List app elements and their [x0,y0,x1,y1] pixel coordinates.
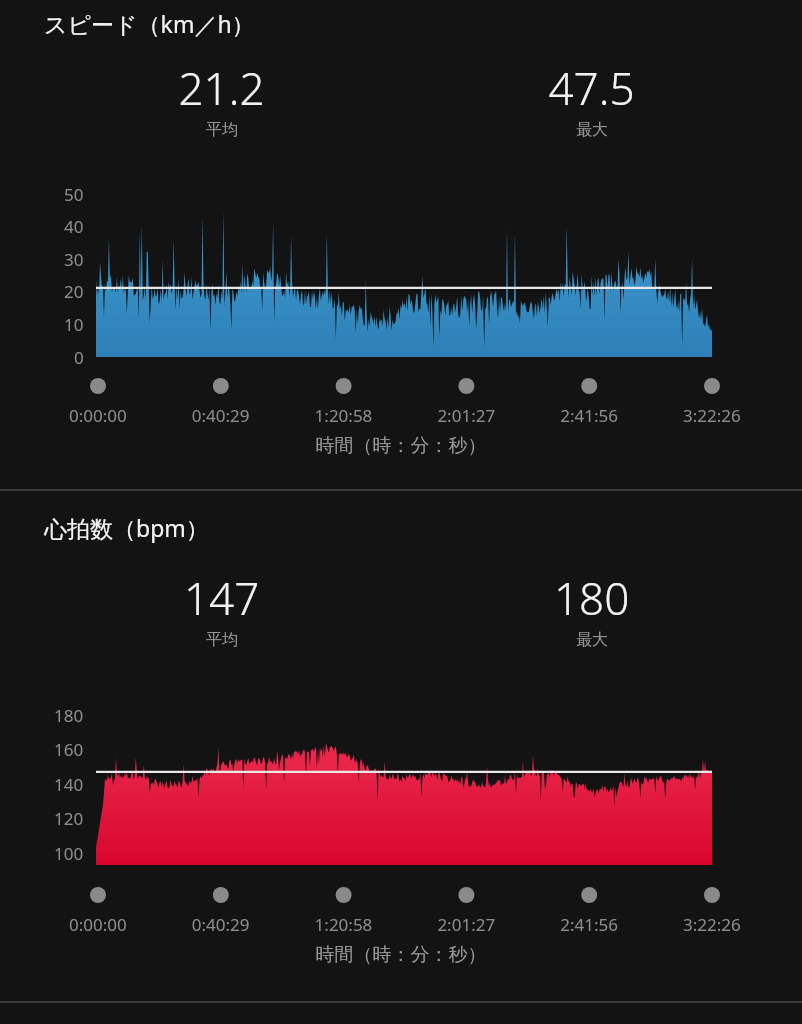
button[interactable] [0,0,802,1024]
